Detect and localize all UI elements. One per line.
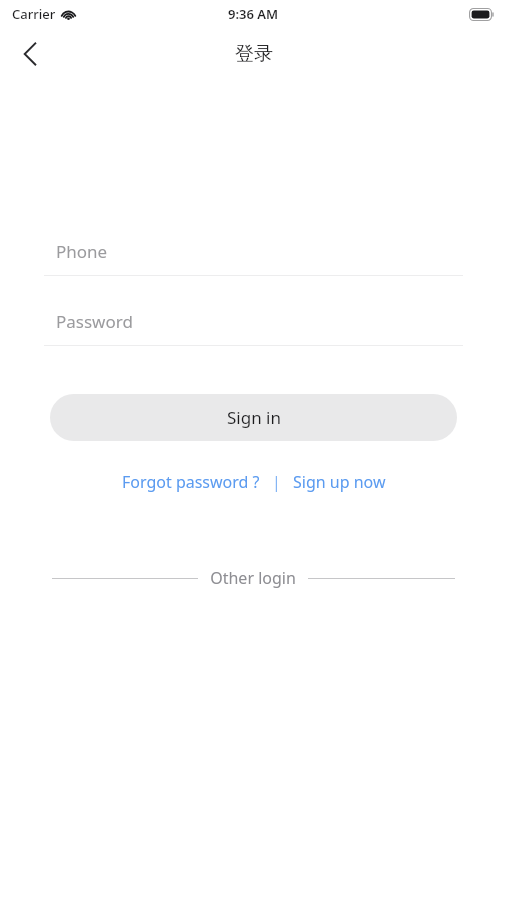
button[interactable]: Sign up now [291, 467, 388, 497]
staticText: Forgot password ? [122, 471, 260, 493]
button[interactable]: Back [8, 32, 52, 76]
staticText: Phone [56, 240, 108, 263]
staticText: Sign in [227, 406, 281, 429]
staticText: Carrier [12, 5, 56, 23]
staticText: 9:36 AM [228, 5, 279, 23]
button[interactable]: Phone [44, 228, 463, 276]
staticText: Other login [210, 567, 296, 589]
staticText: Password [56, 310, 133, 333]
staticText: 登录 [235, 42, 273, 66]
button[interactable]: Forgot password ? [120, 467, 262, 497]
staticText: Sign up now [293, 471, 386, 493]
button[interactable]: Password [44, 298, 463, 346]
button[interactable]: Sign in [50, 394, 457, 441]
staticText: | [272, 471, 281, 493]
